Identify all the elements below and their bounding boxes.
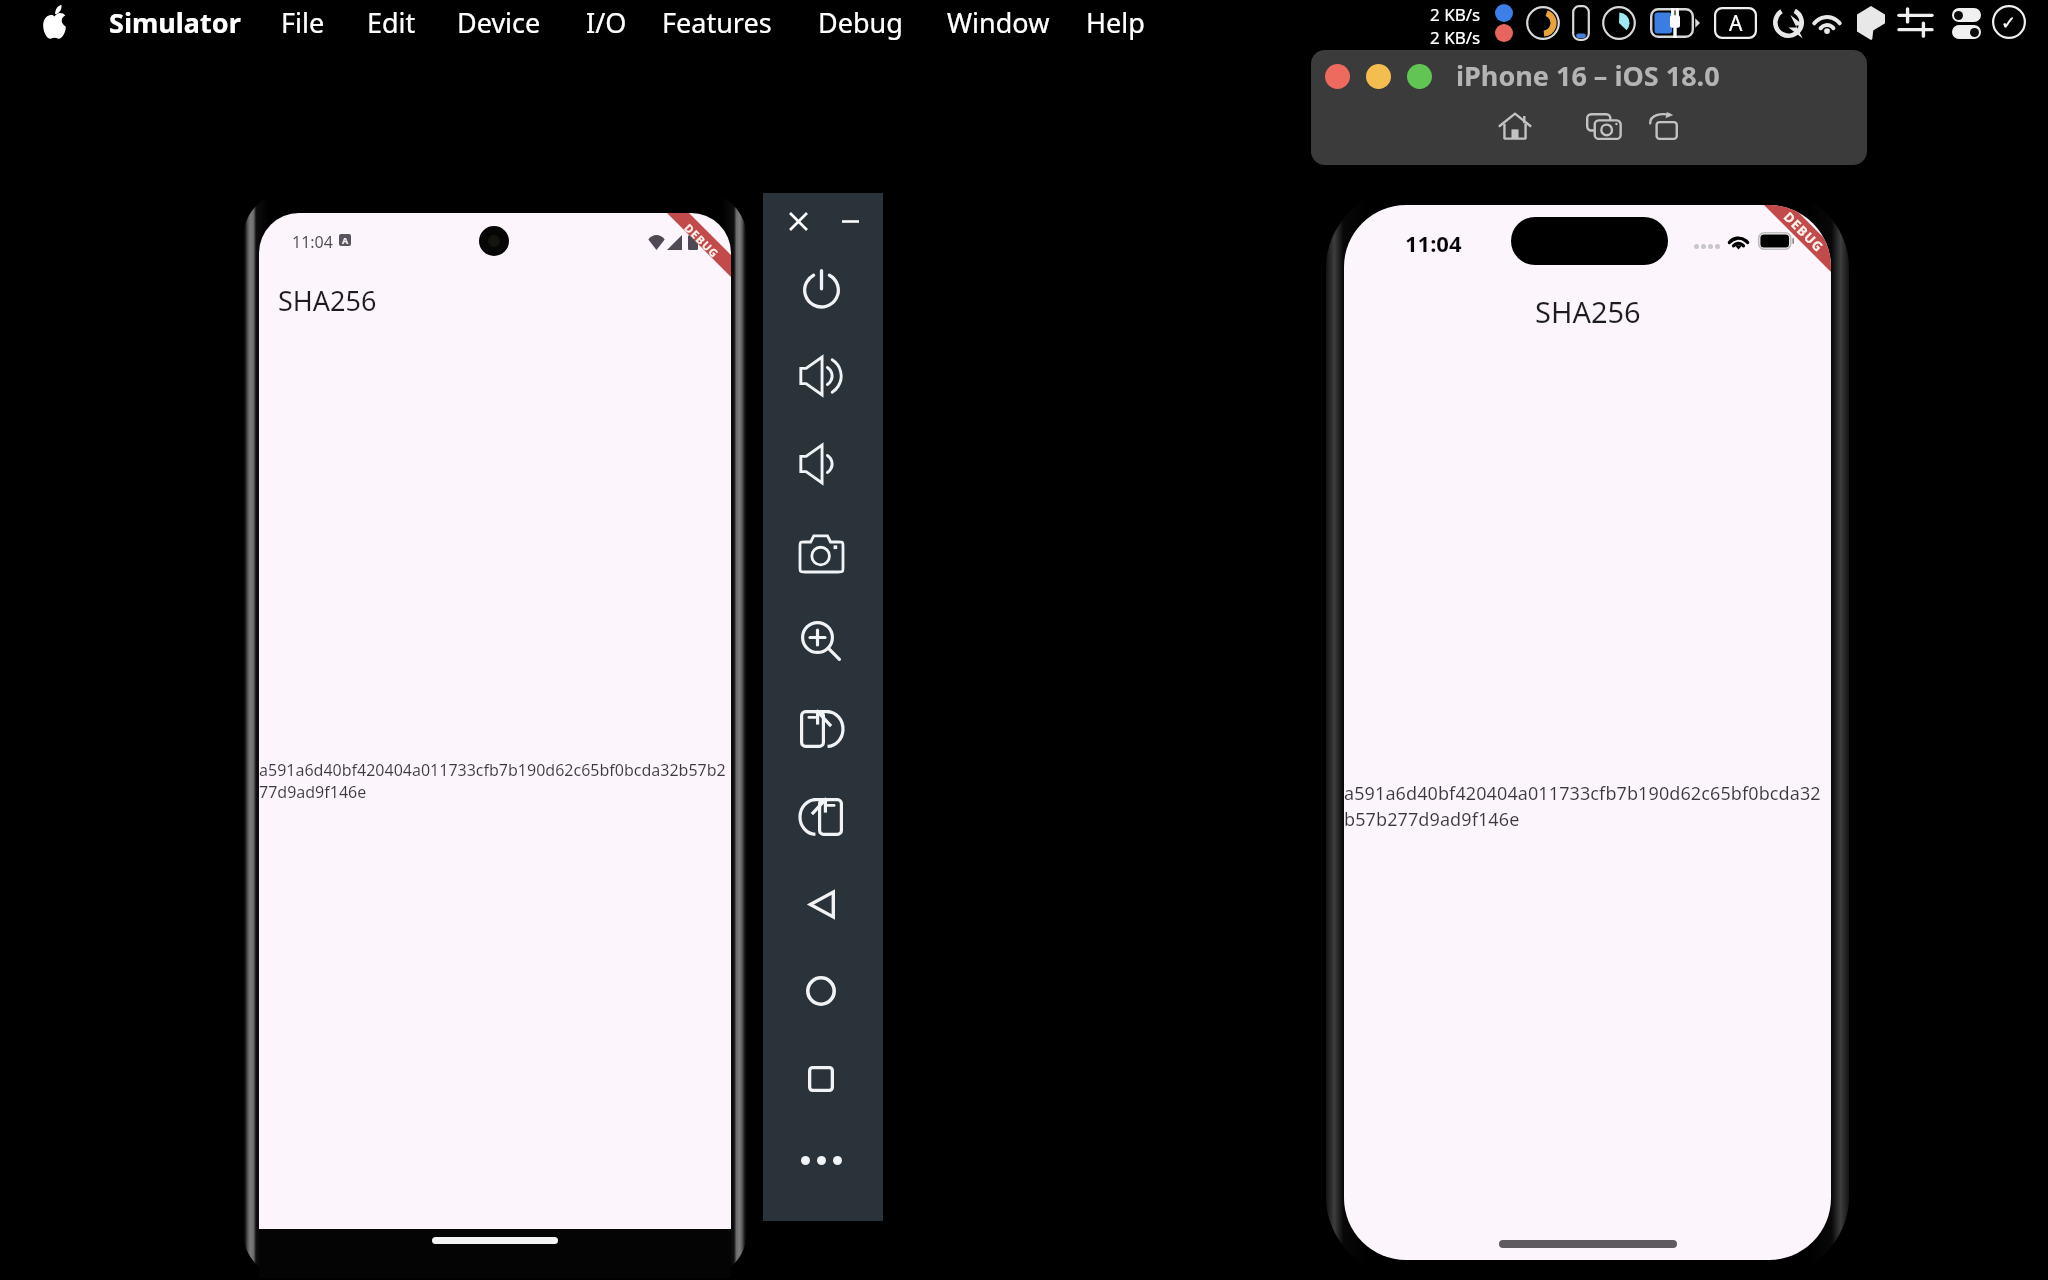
button[interactable]: File	[281, 0, 325, 44]
button[interactable]: Minimize window	[1366, 64, 1391, 89]
staticText: 11:04	[292, 231, 333, 253]
staticText: a591a6d40bf420404a011733cfb7b190d62c65bf…	[259, 759, 731, 803]
button[interactable]: Volume down	[794, 437, 848, 491]
staticText: DEBUG	[1780, 208, 1828, 256]
staticText: 2 KB/s	[1430, 26, 1481, 49]
button[interactable]: Apple menu	[32, 0, 76, 44]
button[interactable]: Rotate right	[794, 790, 848, 844]
staticText: iPhone 16 – iOS 18.0	[1456, 57, 1720, 94]
button[interactable]: Debug	[818, 0, 903, 44]
button[interactable]: Home	[1494, 105, 1536, 147]
staticText: 2 KB/s	[1430, 3, 1481, 26]
button[interactable]: Edit	[367, 0, 416, 44]
staticText: A	[1729, 9, 1743, 38]
button[interactable]: Minimize	[833, 204, 867, 238]
staticText: Debug	[818, 4, 903, 41]
staticText: Simulator	[109, 4, 241, 41]
staticText: ✓	[2001, 12, 2017, 33]
button[interactable]: Simulator	[109, 0, 241, 44]
staticText: DEBUG	[681, 220, 722, 261]
button[interactable]: Help	[1086, 0, 1145, 44]
staticText: Edit	[367, 4, 416, 41]
staticText: Device	[457, 4, 541, 41]
button[interactable]: Screenshot	[1582, 105, 1624, 147]
button[interactable]: Device	[457, 0, 541, 44]
staticText: Help	[1086, 4, 1145, 41]
staticText: SHA256	[1535, 292, 1641, 331]
button[interactable]: Close	[781, 204, 815, 238]
button[interactable]: Home	[794, 964, 848, 1018]
button[interactable]: Zoom	[794, 613, 848, 667]
button[interactable]: Features	[662, 0, 772, 44]
staticText: A	[342, 234, 349, 246]
button[interactable]: Screenshot	[794, 526, 848, 580]
staticText: a591a6d40bf420404a011733cfb7b190d62c65bf…	[1344, 781, 1831, 831]
staticText: 11:04	[1405, 228, 1462, 258]
button[interactable]: More	[794, 1133, 848, 1187]
staticText: Features	[662, 4, 772, 41]
staticText: SHA256	[278, 282, 377, 319]
button[interactable]: Back	[794, 877, 848, 931]
button[interactable]: Zoom window	[1407, 64, 1432, 89]
button[interactable]: Volume up	[794, 349, 848, 403]
button[interactable]: Rotate left	[794, 702, 848, 756]
button[interactable]: Share	[1642, 105, 1684, 147]
button[interactable]: Close window	[1325, 64, 1350, 89]
button[interactable]: Window	[947, 0, 1050, 44]
staticText: Window	[947, 4, 1050, 41]
button[interactable]: I/O	[586, 0, 627, 44]
staticText: I/O	[586, 4, 627, 41]
button[interactable]: Power	[794, 261, 848, 315]
button[interactable]: Overview	[794, 1052, 848, 1106]
staticText: File	[281, 4, 325, 41]
